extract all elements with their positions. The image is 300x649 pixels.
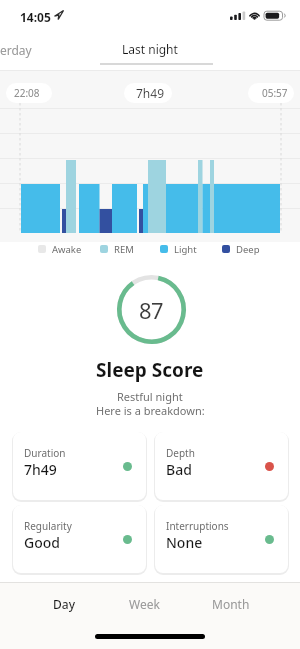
staticText: None (166, 533, 203, 552)
staticText: Week (129, 596, 160, 612)
staticText: 7h49 (136, 85, 165, 101)
button[interactable]: erday (0, 42, 32, 58)
button[interactable]: Depth (155, 432, 288, 500)
staticText: REM (114, 243, 134, 256)
button[interactable]: Regularity (13, 505, 146, 573)
staticText: Restful night (117, 389, 183, 404)
staticText: Month (212, 596, 250, 612)
staticText: Regularity (24, 519, 72, 533)
staticText: Last night (122, 41, 178, 57)
staticText: 87 (139, 295, 164, 325)
staticText: Interruptions (166, 519, 229, 533)
staticText: Deep (236, 243, 260, 256)
staticText: Sleep Score (96, 357, 204, 383)
button[interactable]: Duration (13, 432, 146, 500)
staticText: erday (0, 42, 32, 58)
button[interactable]: Last night (122, 41, 178, 57)
staticText: Awake (52, 243, 82, 256)
staticText: Depth (166, 446, 195, 460)
staticText: Bad (166, 460, 192, 479)
staticText: Good (24, 533, 60, 552)
staticText: Light (174, 243, 197, 256)
staticText: Day (53, 596, 75, 612)
button[interactable]: Interruptions (155, 505, 288, 573)
button[interactable]: Day (40, 590, 88, 618)
staticText: 14:05 (20, 9, 51, 25)
staticText: 05:57 (262, 86, 288, 100)
button[interactable]: Week (120, 590, 168, 618)
staticText: 22:08 (14, 86, 40, 100)
button[interactable]: Month (204, 590, 258, 618)
staticText: Here is a breakdown: (96, 403, 205, 418)
staticText: 7h49 (24, 460, 57, 479)
staticText: Duration (24, 446, 66, 460)
